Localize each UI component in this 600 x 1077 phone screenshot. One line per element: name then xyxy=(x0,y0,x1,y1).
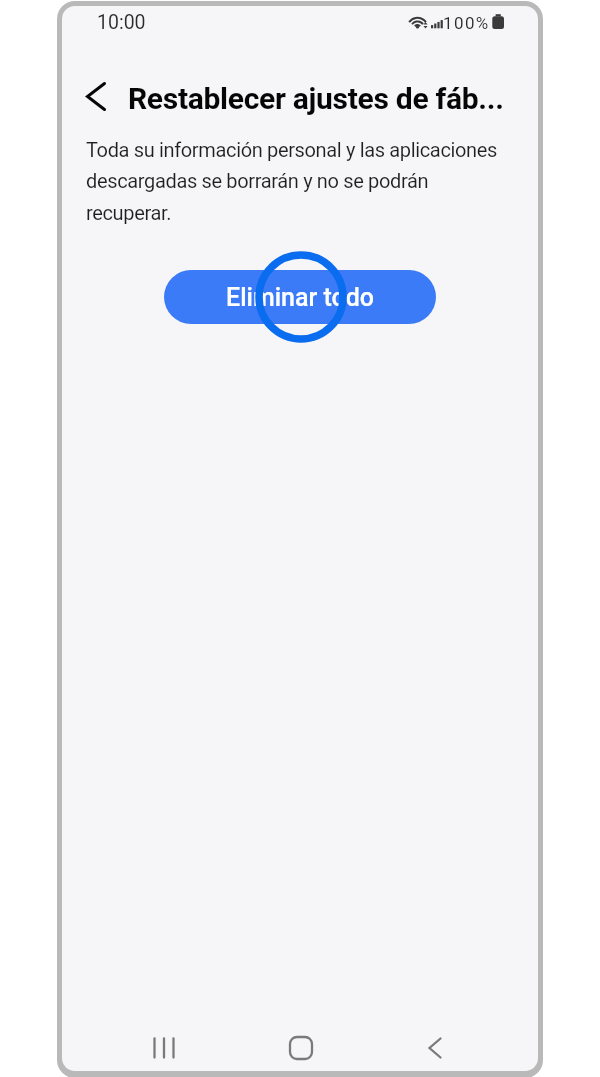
staticText: 10:00 xyxy=(97,11,146,34)
staticText: Toda su información personal y las aplic… xyxy=(86,138,497,225)
staticText: 100% xyxy=(443,13,490,33)
staticText: Eliminar todo xyxy=(226,283,375,312)
staticText: Restablecer ajustes de fáb... xyxy=(128,81,504,116)
